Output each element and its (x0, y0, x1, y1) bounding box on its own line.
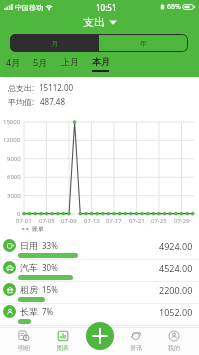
staticText: 月 (51, 39, 58, 48)
button[interactable]: 日用 (0, 238, 199, 260)
button[interactable]: 租房 (0, 282, 199, 304)
staticText: 12000 (3, 136, 21, 144)
staticText: 07-05 (39, 217, 55, 225)
staticText: 9000 (7, 155, 21, 163)
button[interactable]: 汽车 (0, 260, 199, 282)
button[interactable]: 我的 (160, 327, 188, 355)
button[interactable]: 5月 (27, 52, 54, 77)
staticText: 年 (140, 39, 147, 48)
button[interactable]: 本月 (85, 52, 116, 77)
button[interactable]: 图表 (49, 327, 77, 355)
staticText: 资讯 (130, 344, 142, 352)
staticText: 我的 (168, 344, 180, 352)
staticText: 2200.00 (159, 284, 193, 296)
button[interactable]: 长辈 (0, 304, 199, 326)
staticText: 07-09 (61, 217, 77, 225)
staticText: 4924.00 (159, 240, 193, 252)
button[interactable]: 4月 (0, 52, 27, 77)
button[interactable]: 明细 (10, 327, 38, 355)
staticText: 总支出: (8, 82, 35, 93)
button[interactable]: 支出 (77, 15, 123, 29)
staticText: 07-13 (84, 217, 100, 225)
staticText: 68% (167, 2, 181, 12)
staticText: 中国移动 (15, 3, 43, 12)
staticText: 1052.00 (159, 306, 193, 318)
button[interactable]: 资讯 (122, 327, 150, 355)
staticText: 日用 (20, 240, 38, 251)
staticText: 07-21 (129, 217, 145, 225)
staticText: 汽车 (20, 262, 38, 273)
button[interactable]: 年 (99, 34, 188, 52)
staticText: 租房 (20, 284, 38, 295)
staticText: 本月 (92, 56, 110, 67)
staticText: 15% (42, 284, 58, 295)
staticText: 6000 (7, 173, 21, 181)
staticText: 5月 (33, 56, 48, 68)
staticText: 支出 (83, 15, 105, 29)
staticText: 07-01 (16, 217, 32, 225)
staticText: 3000 (7, 192, 21, 200)
staticText: 4月 (6, 56, 21, 68)
staticText: 图表 (57, 344, 69, 352)
staticText: 07-17 (106, 217, 122, 225)
button[interactable]: Add record (86, 322, 114, 350)
staticText: 15112.00 (39, 82, 74, 93)
button[interactable]: 月 (10, 34, 99, 52)
staticText: 15000 (3, 118, 21, 126)
staticText: 33% (42, 240, 58, 251)
staticText: 上月 (61, 56, 79, 67)
staticText: 7% (42, 306, 54, 317)
staticText: 4524.00 (159, 262, 193, 274)
staticText: 长辈 (20, 306, 38, 317)
staticText: 明细 (18, 344, 30, 352)
staticText: 07-25 (151, 217, 167, 225)
staticText: 平均值: (8, 96, 35, 107)
staticText: 07-29 (174, 217, 190, 225)
staticText: 0 (17, 210, 21, 218)
staticText: 10:51 (96, 2, 117, 13)
staticText: 487.48 (40, 96, 66, 107)
staticText: 30% (42, 262, 58, 273)
button[interactable]: 上月 (54, 52, 85, 77)
staticText: 账单 (32, 225, 44, 233)
